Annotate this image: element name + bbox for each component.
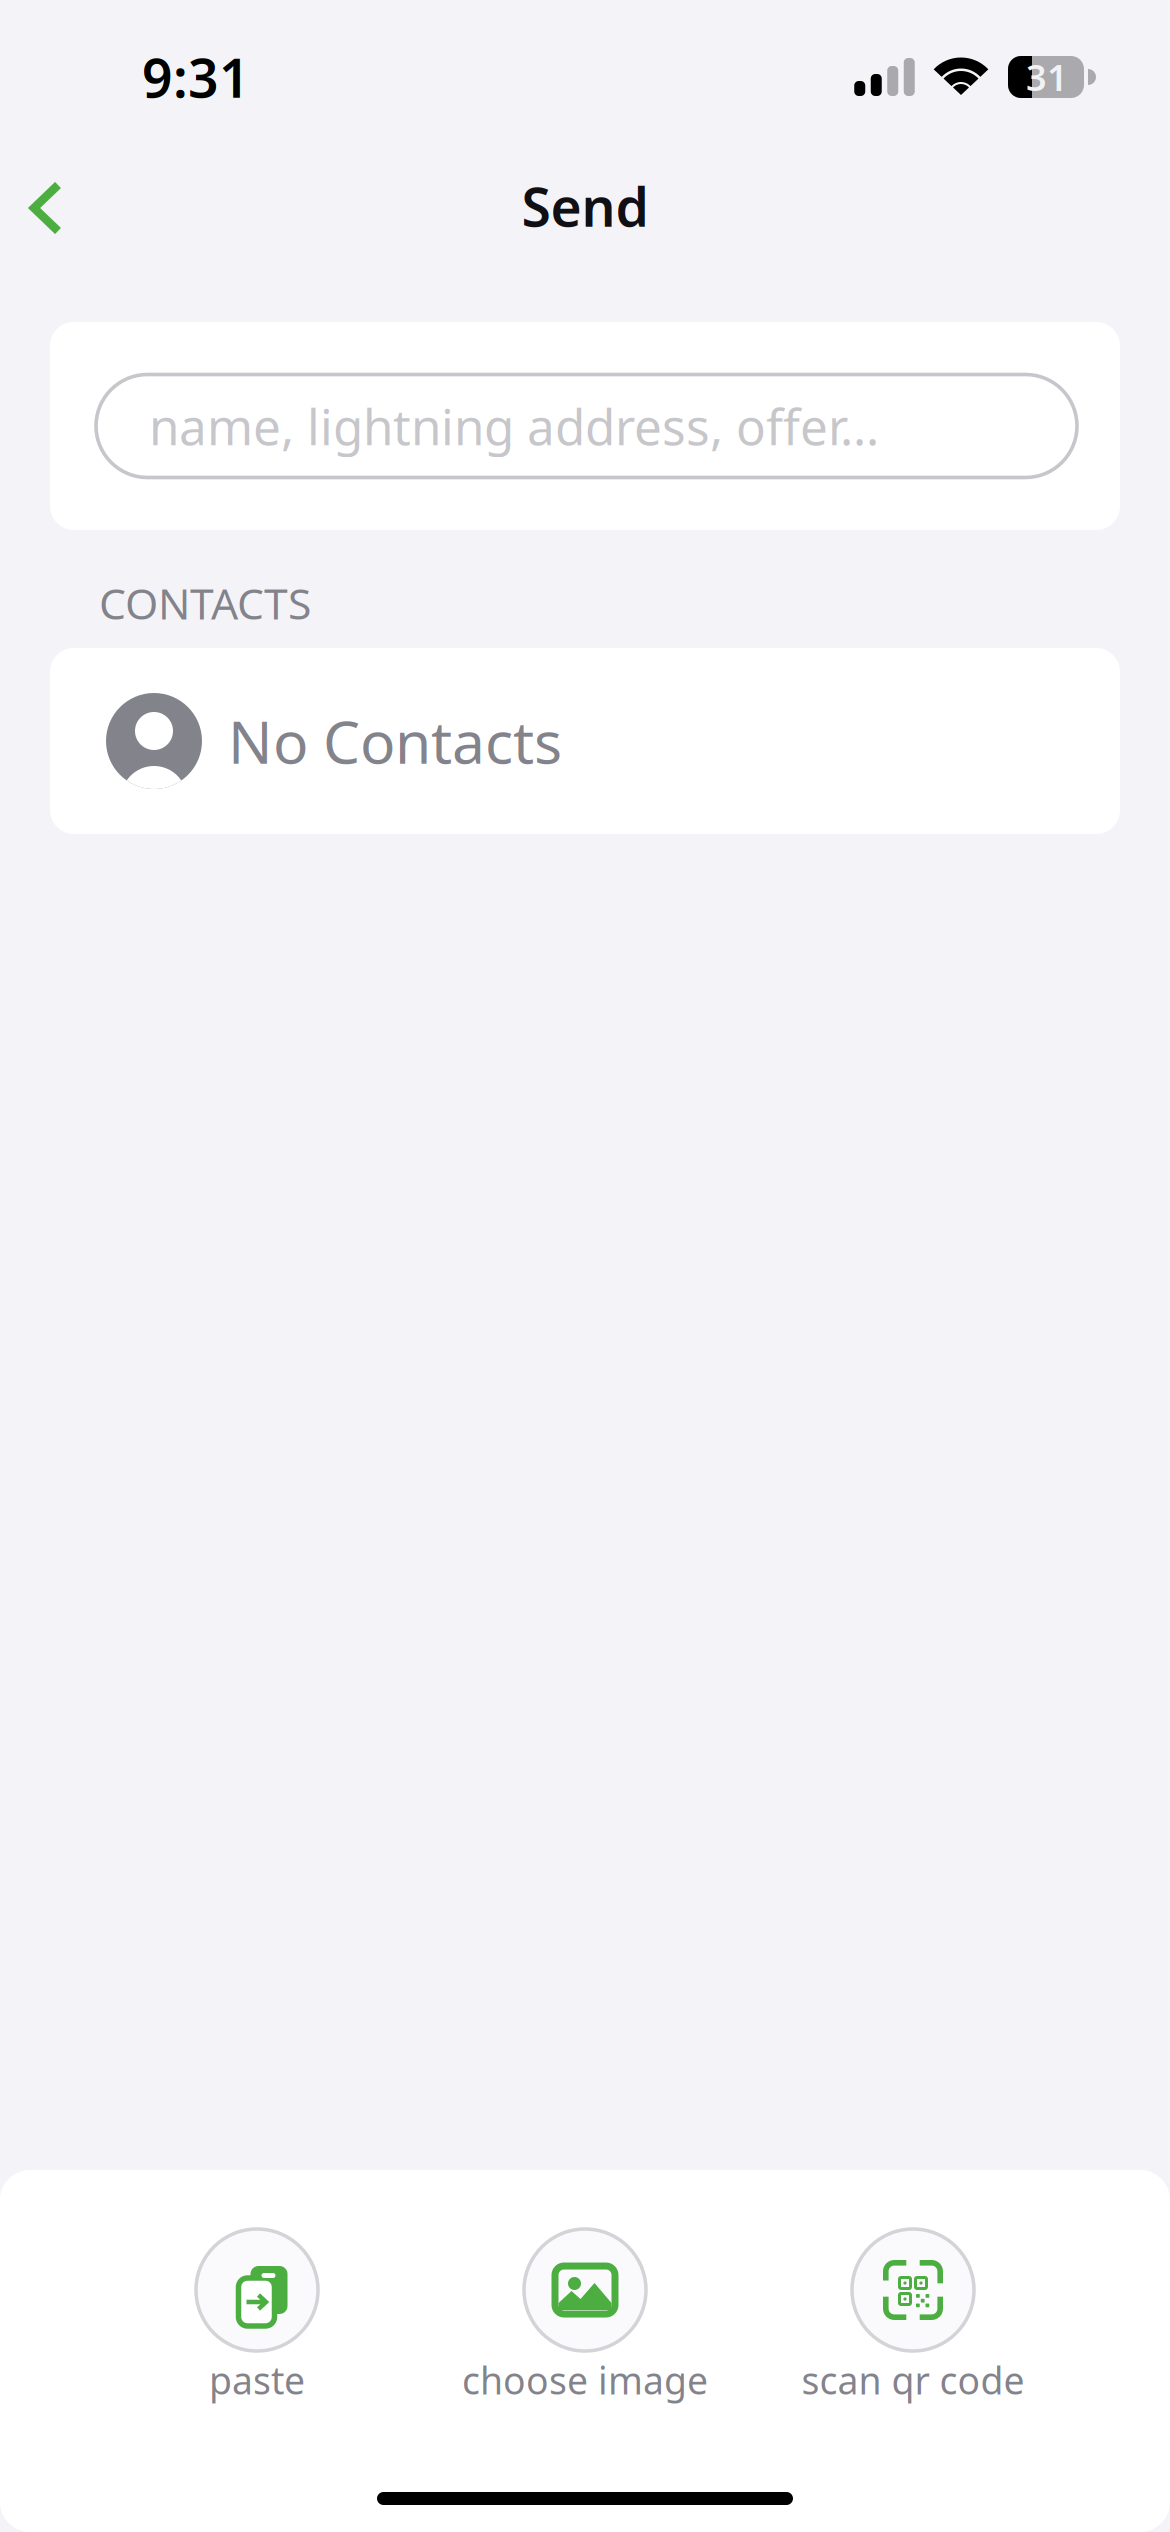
button[interactable]: Back xyxy=(0,135,120,266)
button[interactable]: No Contacts xyxy=(50,648,1120,834)
staticText: choose image xyxy=(462,2355,708,2405)
staticText: No Contacts xyxy=(228,702,562,780)
button[interactable]: paste xyxy=(107,2229,407,2399)
staticText: name, lightning address, offer... xyxy=(149,393,879,459)
staticText: 31 xyxy=(1026,53,1068,101)
button[interactable]: name, lightning address, offer... xyxy=(96,374,1077,477)
button[interactable]: scan qr code xyxy=(763,2229,1063,2399)
staticText: CONTACTS xyxy=(99,575,311,631)
staticText: paste xyxy=(209,2355,305,2405)
staticText: scan qr code xyxy=(801,2355,1024,2405)
staticText: 9:31 xyxy=(142,42,250,112)
staticText: Send xyxy=(521,171,648,241)
button[interactable]: choose image xyxy=(435,2229,735,2399)
